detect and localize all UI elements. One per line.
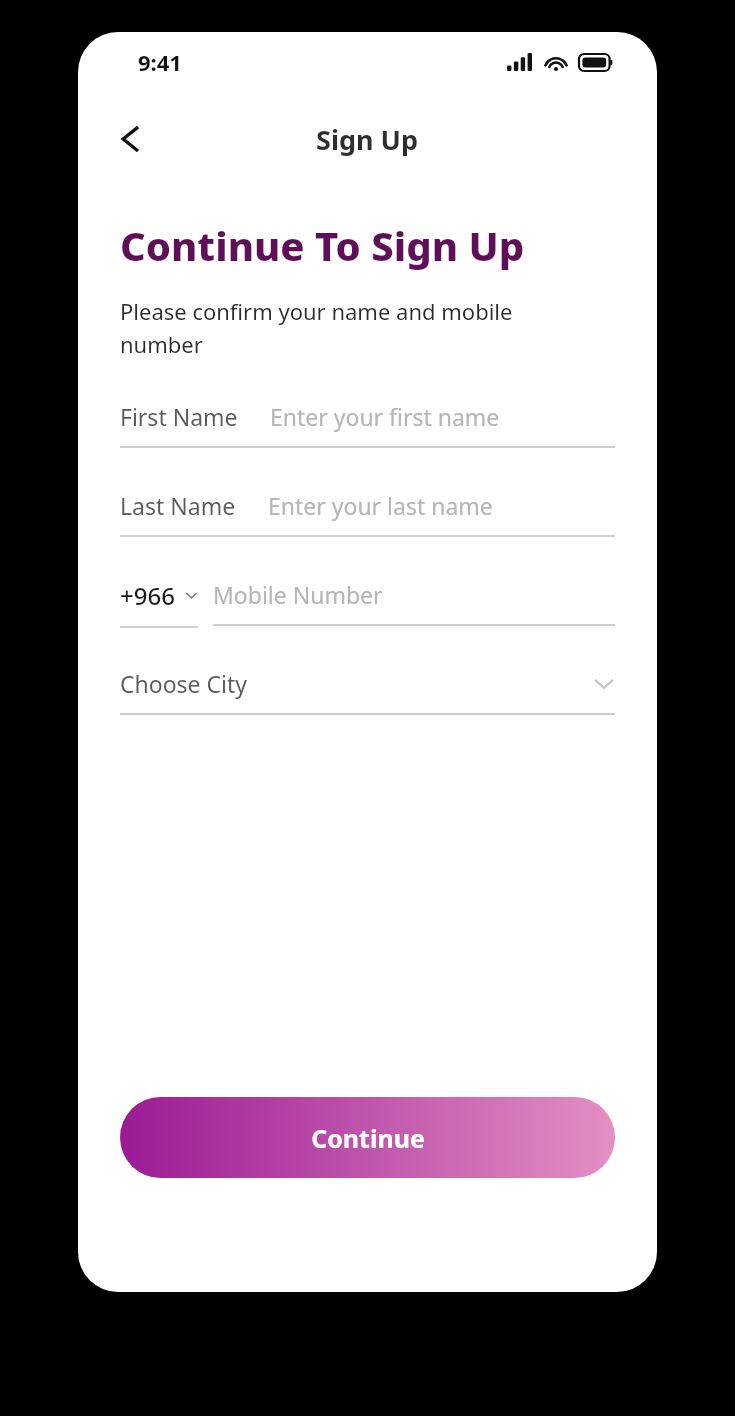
staticText: Please confirm your name and mobile numb… [120,296,513,359]
button[interactable]: Last Name [120,490,615,537]
staticText: Continue To Sign Up [120,218,525,272]
staticText: Mobile Number [213,579,383,610]
button[interactable]: First Name [120,401,615,448]
button[interactable]: Continue [120,1097,615,1178]
staticText: Sign Up [316,121,419,158]
staticText: Enter your last name [268,490,493,521]
button[interactable]: Choose City [120,668,615,715]
staticText: Enter your first name [270,401,500,432]
staticText: First Name [120,401,238,432]
staticText: +966 [120,579,175,612]
staticText: Last Name [120,490,236,521]
staticText: Choose City [120,668,248,699]
staticText: Continue [311,1121,425,1155]
button[interactable]: +966 [120,579,198,628]
button[interactable]: Back [100,108,162,170]
staticText: 9:41 [138,47,182,77]
button[interactable]: Mobile Number [213,579,615,626]
